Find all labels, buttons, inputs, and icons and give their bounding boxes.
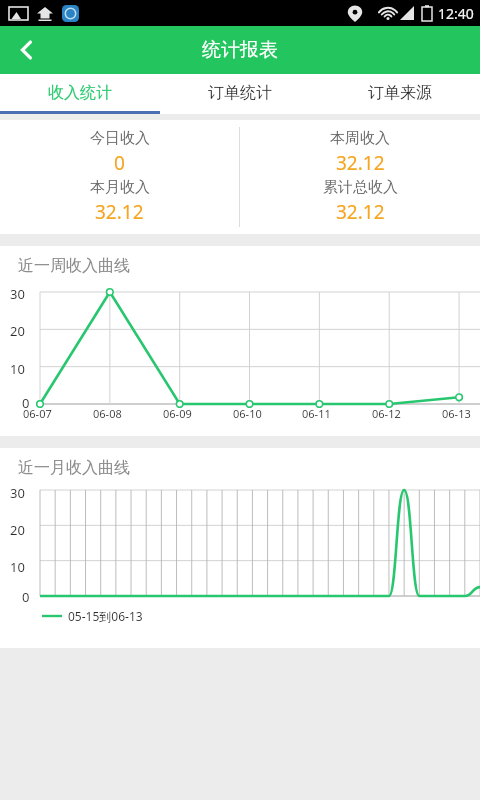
staticText: 06-13 [442,406,471,421]
staticText: 订单来源 [368,83,432,103]
staticText: 12:40 [438,4,474,23]
staticText: 06-07 [23,406,52,421]
staticText: 06-12 [372,406,401,421]
staticText: 订单统计 [208,83,272,103]
staticText: 32.12 [336,150,385,176]
button[interactable]: 本周收入 [240,120,480,234]
staticText: 06-09 [163,406,192,421]
staticText: 本月收入 [90,178,150,197]
staticText: 近一月收入曲线 [18,458,130,478]
button[interactable]: Back [0,26,54,74]
staticText: 近一周收入曲线 [18,256,130,276]
staticText: 10 [10,360,25,378]
button[interactable]: 收入统计 [0,74,160,111]
button[interactable]: 订单来源 [320,74,480,111]
button[interactable]: 今日收入 [0,120,239,234]
staticText: 0 [114,150,125,176]
staticText: 06-10 [233,406,262,421]
staticText: 20 [10,322,25,340]
staticText: 20 [10,521,25,539]
staticText: 10 [10,558,25,576]
staticText: 05-15到06-13 [68,608,143,624]
staticText: 累计总收入 [323,178,398,197]
staticText: 32.12 [336,199,385,225]
staticText: 30 [10,285,25,303]
staticText: 06-11 [302,406,331,421]
staticText: 收入统计 [48,83,112,103]
staticText: 30 [10,484,25,502]
staticText: 0 [22,394,30,412]
button[interactable]: 订单统计 [160,74,320,111]
staticText: 32.12 [95,199,144,225]
staticText: 统计报表 [202,38,278,62]
staticText: 今日收入 [90,129,150,148]
staticText: 06-08 [93,406,122,421]
staticText: 0 [22,588,30,606]
staticText: 本周收入 [330,129,390,148]
